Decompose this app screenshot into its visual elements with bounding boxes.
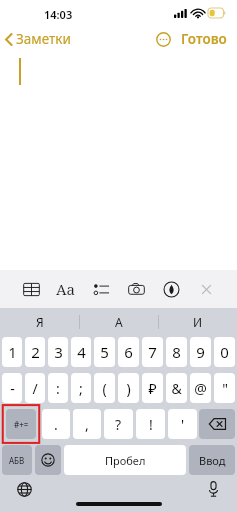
button[interactable]: 8 (166, 337, 187, 367)
staticText: Ввод (199, 453, 226, 468)
button[interactable]: АБВ (2, 445, 32, 475)
staticText: ) (126, 379, 131, 398)
button[interactable]: Close toolbar (193, 276, 219, 302)
button[interactable]: ! (136, 409, 165, 439)
button[interactable]: #+= (2, 409, 40, 439)
button[interactable]: Markup (158, 276, 184, 302)
staticText: 0 (220, 342, 229, 362)
staticText: , (85, 415, 89, 434)
button[interactable]: А (80, 308, 158, 335)
button[interactable]: " (214, 373, 235, 403)
button[interactable]: ) (118, 373, 139, 403)
staticText: & (171, 379, 182, 398)
button[interactable]: & (166, 373, 187, 403)
button[interactable]: ' (168, 409, 197, 439)
staticText: Готово (181, 30, 227, 48)
button[interactable]: 4 (71, 337, 91, 367)
staticText: 7 (148, 342, 157, 362)
button[interactable]: Готово (177, 27, 231, 51)
button[interactable]: Пробел (64, 445, 186, 475)
button[interactable]: Я (0, 308, 79, 335)
button[interactable]: Text format (53, 276, 79, 302)
button[interactable]: , (73, 409, 101, 439)
staticText: Я (36, 314, 44, 330)
button[interactable]: Camera (123, 276, 149, 302)
staticText: 5 (100, 342, 109, 362)
button[interactable]: Checklist (88, 276, 114, 302)
staticText: Aa (56, 279, 76, 299)
button[interactable]: Switch keyboard language (12, 477, 36, 501)
button[interactable]: И (159, 308, 237, 335)
staticText: @ (194, 379, 207, 398)
button[interactable]: 3 (48, 337, 68, 367)
button[interactable]: : (48, 373, 68, 403)
button[interactable]: Emoji (35, 445, 61, 475)
button[interactable]: Ввод (189, 445, 235, 475)
staticText: 1 (8, 342, 17, 362)
button[interactable]: ; (71, 373, 91, 403)
staticText: / (32, 379, 38, 398)
staticText: #+= (14, 419, 29, 430)
button[interactable]: ? (104, 409, 133, 439)
button[interactable]: 0 (214, 337, 235, 367)
button[interactable]: Заметки (0, 27, 77, 51)
button[interactable]: More options (151, 27, 175, 51)
button[interactable] (0, 52, 237, 270)
staticText: А (115, 314, 123, 330)
staticText: " (222, 379, 228, 398)
staticText: - (10, 379, 15, 398)
button[interactable]: / (25, 373, 45, 403)
staticText: АБВ (9, 455, 25, 466)
staticText: ; (79, 379, 83, 398)
staticText: ₽ (148, 379, 157, 398)
button[interactable]: 6 (118, 337, 139, 367)
staticText: ! (149, 415, 153, 434)
staticText: ' (181, 415, 185, 434)
staticText: Заметки (16, 30, 71, 48)
staticText: 4 (77, 342, 86, 362)
staticText: : (56, 379, 60, 398)
button[interactable]: Dictation (201, 477, 225, 501)
staticText: Пробел (105, 453, 146, 468)
staticText: 9 (196, 342, 205, 362)
button[interactable]: 5 (94, 337, 115, 367)
button[interactable]: 2 (25, 337, 45, 367)
button[interactable]: Backspace (199, 409, 235, 439)
button[interactable]: - (2, 373, 22, 403)
button[interactable]: 1 (2, 337, 22, 367)
staticText: ? (115, 415, 122, 434)
button[interactable]: ₽ (142, 373, 163, 403)
staticText: 14:03 (44, 7, 73, 22)
staticText: ( (102, 379, 107, 398)
button[interactable]: ( (94, 373, 115, 403)
staticText: 3 (54, 342, 63, 362)
staticText: 8 (172, 342, 181, 362)
button[interactable]: . (42, 409, 70, 439)
button[interactable]: Insert table (18, 276, 44, 302)
button[interactable]: 9 (190, 337, 211, 367)
button[interactable]: @ (190, 373, 211, 403)
staticText: 6 (124, 342, 133, 362)
staticText: 2 (31, 342, 40, 362)
staticText: И (193, 314, 203, 330)
staticText: . (54, 415, 58, 434)
button[interactable]: 7 (142, 337, 163, 367)
